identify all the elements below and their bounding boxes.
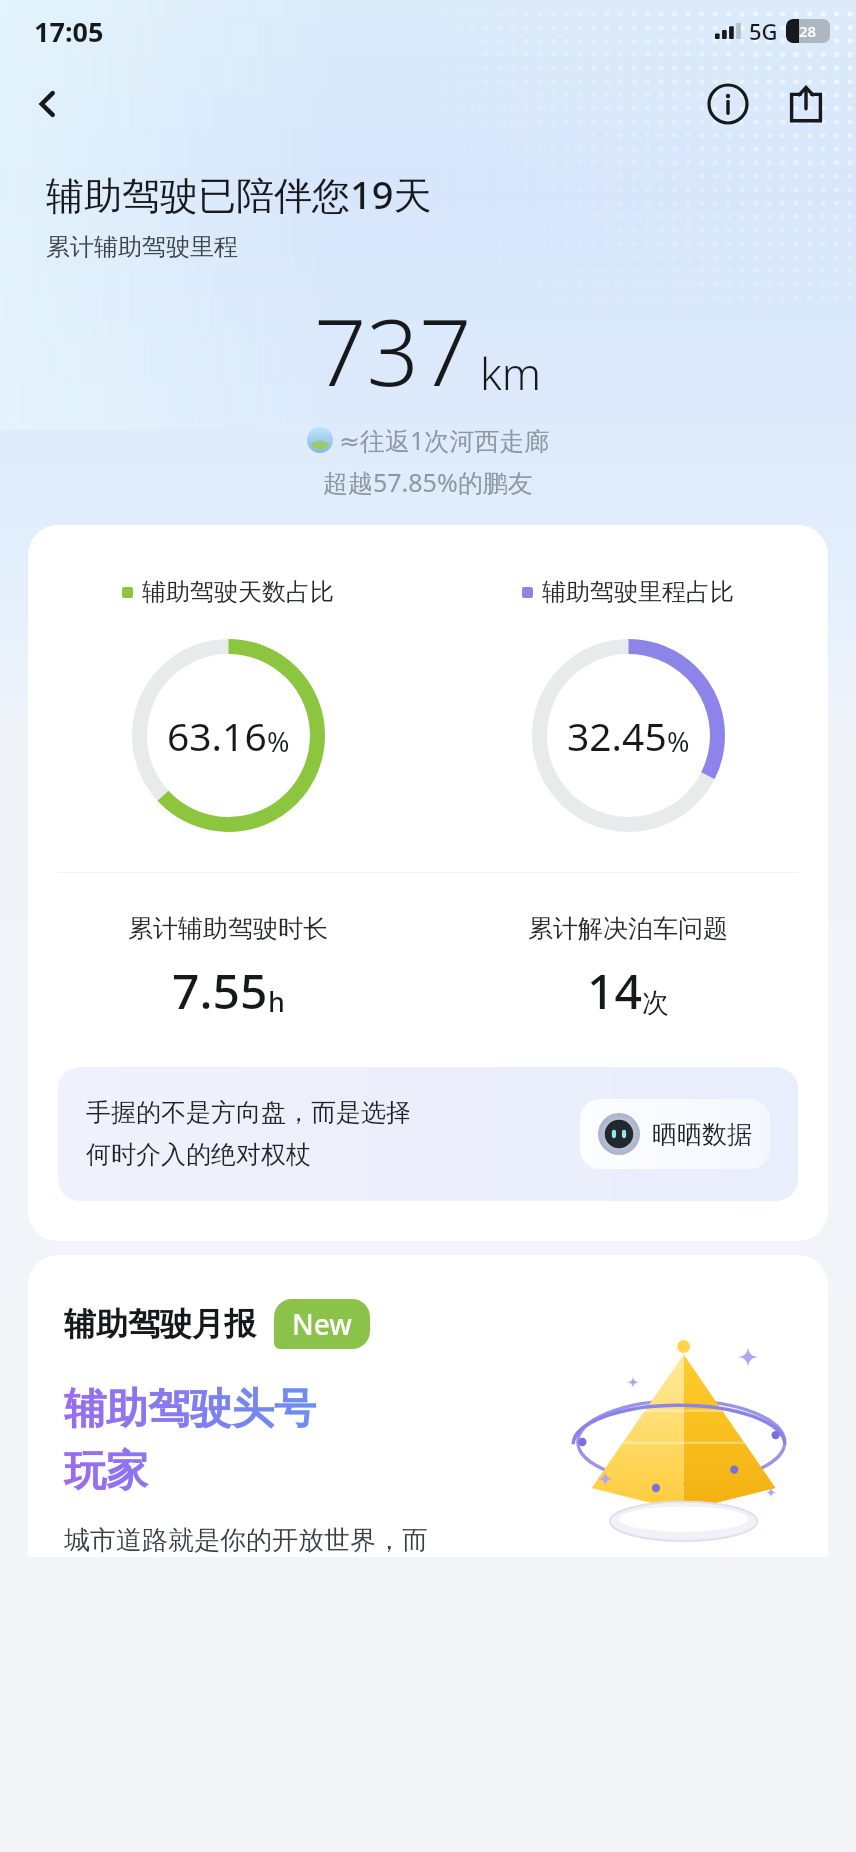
staticText: 17:05 <box>34 13 104 50</box>
button[interactable]: 辅助驾驶月报 <box>28 1255 828 1557</box>
button[interactable]: 手握的不是方向盘，而是选择 何时介入的绝对权杖 <box>58 1067 798 1201</box>
button[interactable]: 晒晒数据 <box>580 1099 770 1169</box>
staticText: % <box>267 723 290 760</box>
staticText: 7.55 <box>172 958 268 1023</box>
staticText: 手握的不是方向盘，而是选择 何时介入的绝对权杖 <box>86 1097 570 1171</box>
button[interactable]: Info <box>700 76 756 132</box>
staticText: 63.16 <box>167 709 267 762</box>
staticText: % <box>667 723 690 760</box>
staticText: km <box>480 343 542 403</box>
staticText: h <box>268 983 285 1020</box>
staticText: 超越57.85%的鹏友 <box>323 465 533 499</box>
button[interactable]: Share <box>778 76 834 132</box>
staticText: 辅助驾驶月报 <box>64 1304 256 1344</box>
staticText: ≈往返1次河西走廊 <box>339 423 550 457</box>
button[interactable]: 辅助驾驶天数占比 <box>28 525 828 1241</box>
staticText: 辅助驾驶已陪伴您19天 <box>46 168 432 220</box>
button[interactable]: Back <box>20 76 76 132</box>
staticText: 辅助驾驶里程占比 <box>542 577 734 607</box>
staticText: 辅助驾驶头号 玩家 <box>64 1383 316 1498</box>
staticText: 累计解决泊车问题 <box>528 913 728 944</box>
staticText: 14 <box>587 958 642 1023</box>
staticText: New <box>292 1305 352 1343</box>
staticText: 晒晒数据 <box>652 1119 752 1150</box>
staticText: 5G <box>749 16 778 46</box>
staticText: 城市道路就是你的开放世界，而 <box>64 1524 428 1557</box>
staticText: 32.45 <box>567 709 667 762</box>
staticText: 累计辅助驾驶时长 <box>128 913 328 944</box>
staticText: 累计辅助驾驶里程 <box>46 232 238 262</box>
staticText: 737 <box>314 288 472 413</box>
staticText: 辅助驾驶天数占比 <box>142 577 334 607</box>
staticText: 28 <box>799 21 817 41</box>
staticText: 次 <box>642 986 669 1020</box>
